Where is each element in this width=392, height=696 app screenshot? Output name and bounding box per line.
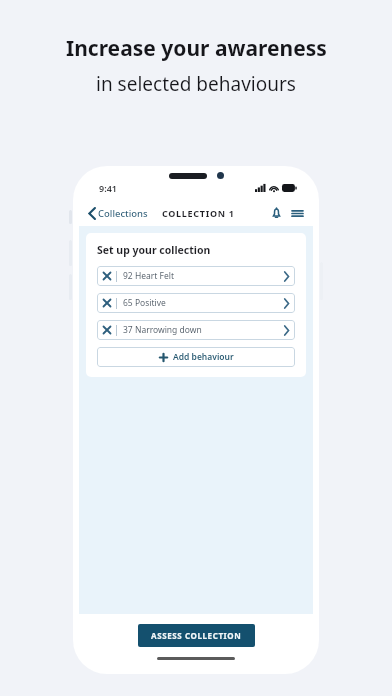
button[interactable]: Notifications <box>270 206 283 221</box>
staticText: 37 Narrowing down <box>123 324 284 336</box>
staticText: Increase your awareness <box>66 34 327 63</box>
staticText: Add behaviour <box>173 351 234 363</box>
staticText: COLLECTION 1 <box>162 207 235 219</box>
staticText: Collections <box>98 207 148 220</box>
staticText: 92 Heart Felt <box>123 270 284 282</box>
staticText: Set up your collection <box>97 243 211 257</box>
button[interactable]: 37 Narrowing down <box>97 320 295 340</box>
button[interactable]: Menu <box>290 207 305 220</box>
staticText: ASSESS COLLECTION <box>151 630 242 641</box>
staticText: 65 Positive <box>123 297 284 309</box>
button[interactable]: ASSESS COLLECTION <box>138 624 255 647</box>
button[interactable]: Add behaviour <box>97 347 295 367</box>
button[interactable]: 92 Heart Felt <box>97 266 295 286</box>
staticText: 9:41 <box>99 182 117 194</box>
button[interactable]: 65 Positive <box>97 293 295 313</box>
staticText: in selected behaviours <box>96 71 296 97</box>
button[interactable]: Collections <box>87 204 150 223</box>
